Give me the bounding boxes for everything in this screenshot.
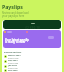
staticText: Jan 2024 — [8, 64, 18, 67]
staticText: Paid 28 Feb — [8, 62, 19, 64]
button[interactable]: Jan 2024 — [4, 64, 60, 69]
staticText: Feb 2024 — [8, 59, 18, 62]
staticText: Payslips — [2, 3, 23, 10]
staticText: March 2024 — [8, 54, 21, 57]
button[interactable]: Feb 2024 — [4, 59, 60, 64]
staticText: Dec 2023 — [8, 69, 18, 72]
staticText: Your latest payslip is ready to view — [5, 38, 29, 44]
button[interactable]: Mar — [3, 20, 61, 29]
staticText: Paid 28 Mar — [8, 57, 19, 59]
staticText: Paid 28 Jan — [8, 67, 18, 69]
staticText: Review and download your payslips here — [2, 11, 29, 17]
staticText: Mar — [31, 22, 35, 25]
button[interactable]: Your latest payslip is ready to view — [3, 30, 61, 48]
staticText: £2,430.18 — [25, 26, 40, 29]
staticText: Payslip history — [4, 50, 22, 53]
button[interactable]: March 2024 — [4, 54, 60, 59]
button[interactable]: Dec 2023 — [4, 69, 60, 72]
